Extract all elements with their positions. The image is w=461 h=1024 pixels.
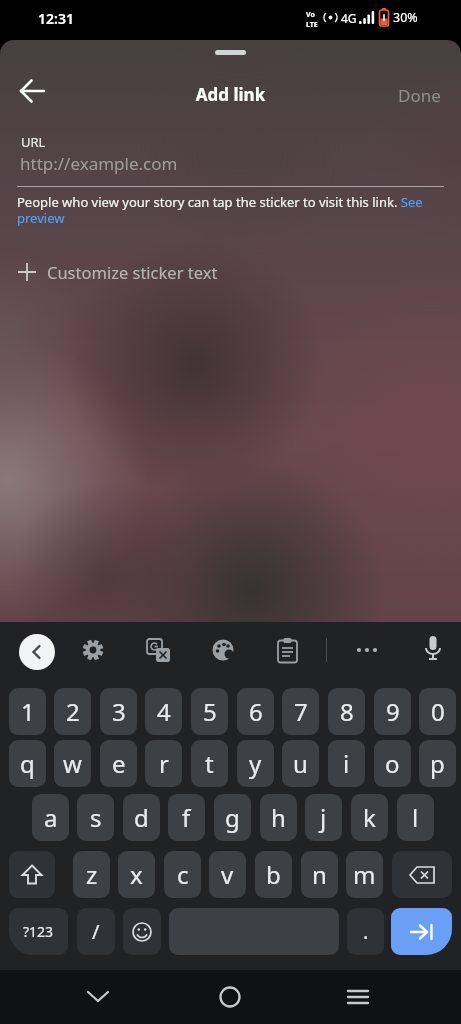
button[interactable]: 1: [9, 688, 46, 735]
button[interactable]: g: [214, 794, 251, 841]
button[interactable]: Done: [398, 84, 441, 107]
button[interactable]: [81, 638, 105, 662]
button[interactable]: l: [397, 794, 434, 841]
button[interactable]: 2: [54, 688, 91, 735]
button[interactable]: u: [282, 740, 319, 787]
button[interactable]: [356, 646, 378, 654]
button[interactable]: r: [145, 740, 182, 787]
button[interactable]: a: [32, 794, 69, 841]
button[interactable]: [123, 908, 161, 955]
staticText: 7: [294, 695, 308, 728]
staticText: n: [312, 858, 327, 891]
staticText: j: [320, 801, 327, 834]
button[interactable]: 4: [145, 688, 182, 735]
button[interactable]: [277, 638, 299, 664]
button[interactable]: [424, 636, 442, 664]
button[interactable]: c: [164, 851, 201, 898]
staticText: h: [271, 801, 286, 834]
button[interactable]: [87, 990, 109, 1003]
button[interactable]: http://example.com: [20, 152, 178, 175]
staticText: URL: [21, 133, 46, 151]
button[interactable]: 0: [419, 688, 456, 735]
button[interactable]: b: [255, 851, 292, 898]
button[interactable]: f: [168, 794, 205, 841]
staticText: r: [159, 747, 169, 780]
staticText: o: [385, 747, 400, 780]
button[interactable]: x: [118, 851, 155, 898]
staticText: g: [225, 801, 240, 834]
button[interactable]: Customize sticker text: [17, 261, 218, 283]
button[interactable]: 8: [328, 688, 365, 735]
staticText: w: [63, 747, 82, 780]
button[interactable]: d: [123, 794, 160, 841]
button[interactable]: v: [209, 851, 246, 898]
staticText: e: [112, 747, 126, 780]
staticText: x: [130, 858, 143, 891]
staticText: 4G: [341, 10, 357, 26]
staticText: p: [430, 747, 445, 780]
staticText: Vo: [306, 10, 315, 20]
staticText: c: [177, 858, 189, 891]
button[interactable]: [219, 986, 241, 1008]
staticText: /: [92, 918, 100, 945]
button[interactable]: [9, 851, 55, 898]
staticText: People who view your story can tap the s…: [17, 193, 423, 211]
button[interactable]: k: [351, 794, 388, 841]
staticText: d: [134, 801, 149, 834]
button[interactable]: h: [260, 794, 297, 841]
button[interactable]: [19, 634, 55, 670]
staticText: 9: [386, 695, 400, 728]
button[interactable]: ?123: [9, 908, 68, 955]
staticText: .: [363, 918, 369, 945]
staticText: i: [343, 747, 350, 780]
staticText: 1: [21, 695, 35, 728]
staticText: LTE: [306, 20, 318, 30]
button[interactable]: [392, 851, 452, 898]
button[interactable]: n: [301, 851, 338, 898]
staticText: 0: [431, 695, 445, 728]
staticText: 4: [157, 695, 171, 728]
button[interactable]: preview: [17, 209, 65, 227]
button[interactable]: 5: [191, 688, 228, 735]
button[interactable]: e: [100, 740, 137, 787]
button[interactable]: 6: [237, 688, 274, 735]
button[interactable]: .: [347, 908, 384, 955]
staticText: u: [293, 747, 308, 780]
button[interactable]: z: [73, 851, 110, 898]
button[interactable]: m: [346, 851, 383, 898]
button[interactable]: 3: [100, 688, 137, 735]
button[interactable]: [212, 639, 236, 663]
button[interactable]: t: [191, 740, 228, 787]
button[interactable]: w: [54, 740, 91, 787]
button[interactable]: p: [419, 740, 456, 787]
staticText: s: [90, 801, 102, 834]
staticText: v: [221, 858, 234, 891]
button[interactable]: q: [9, 740, 46, 787]
button[interactable]: [391, 908, 452, 955]
button[interactable]: 7: [282, 688, 319, 735]
staticText: l: [412, 801, 419, 834]
button[interactable]: o: [374, 740, 411, 787]
button[interactable]: [147, 639, 171, 663]
staticText: 8: [340, 695, 354, 728]
button[interactable]: j: [305, 794, 342, 841]
staticText: Add link: [0, 83, 461, 106]
staticText: Customize sticker text: [47, 261, 218, 283]
button[interactable]: [20, 79, 46, 105]
staticText: f: [182, 801, 191, 834]
staticText: y: [249, 747, 262, 780]
staticText: 2: [66, 695, 80, 728]
button[interactable]: /: [77, 908, 115, 955]
staticText: k: [363, 801, 376, 834]
button[interactable]: y: [237, 740, 274, 787]
button[interactable]: i: [328, 740, 365, 787]
staticText: t: [205, 747, 214, 780]
staticText: 5: [203, 695, 217, 728]
staticText: z: [86, 858, 98, 891]
staticText: q: [20, 747, 35, 780]
button[interactable]: 9: [374, 688, 411, 735]
button[interactable]: [347, 989, 369, 1005]
button[interactable]: s: [77, 794, 114, 841]
staticText: 30%: [393, 9, 418, 26]
